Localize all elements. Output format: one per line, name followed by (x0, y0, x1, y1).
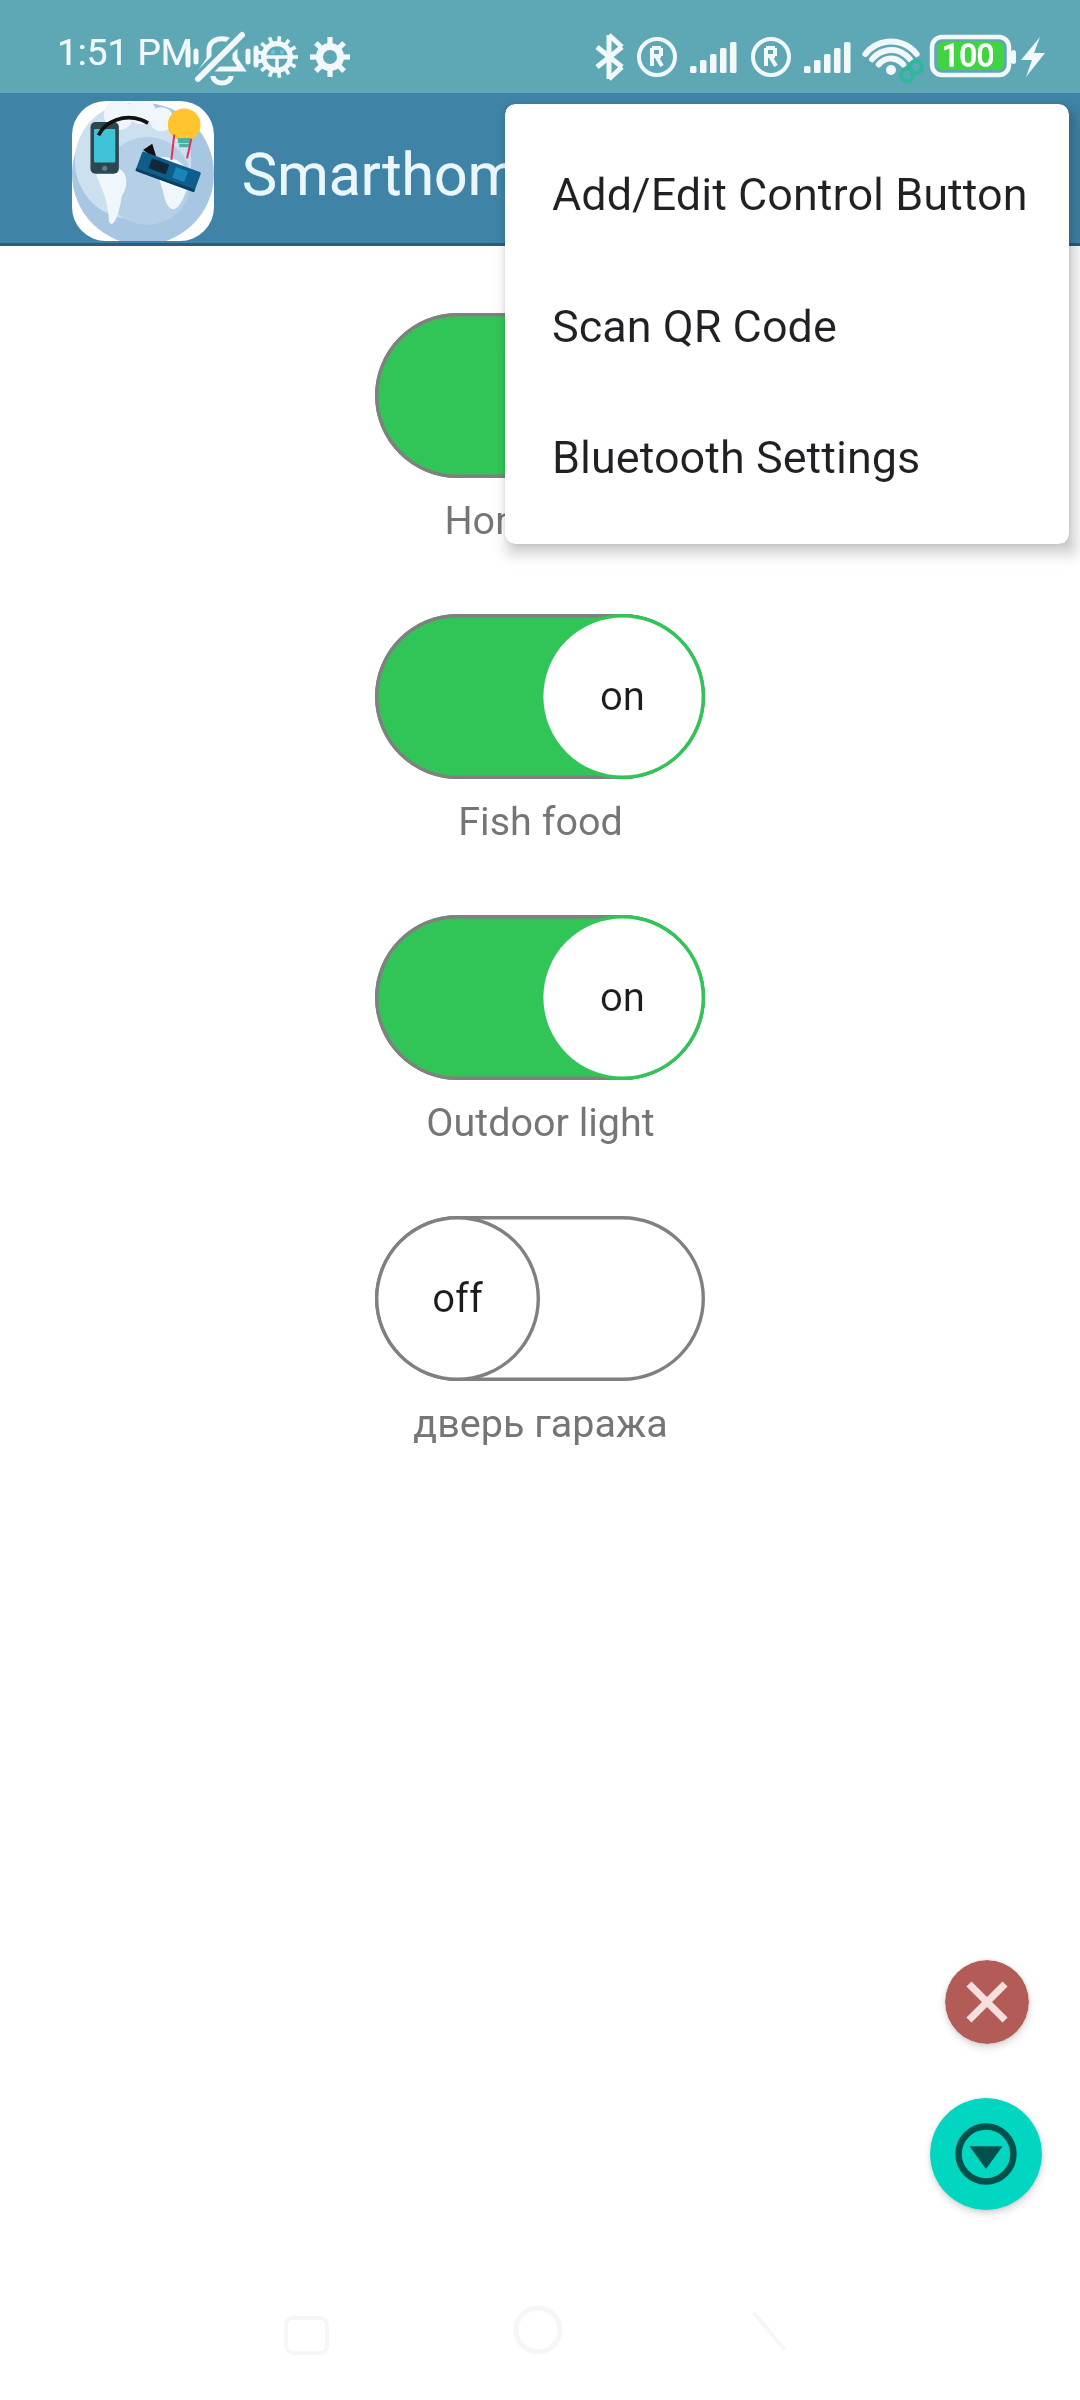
staticText: 100 (942, 37, 995, 73)
staticText: Bluetooth Settings (552, 431, 921, 484)
button[interactable]: Bluetooth Settings (505, 391, 1069, 523)
staticText: Home light (444, 497, 637, 543)
button[interactable]: Expand (930, 2098, 1042, 2210)
staticText: 1:51 PM (57, 31, 194, 74)
button[interactable]: Add/Edit Control Button (505, 128, 1069, 260)
button[interactable]: Close (945, 1960, 1029, 2044)
staticText: on (600, 974, 645, 1021)
staticText: Smarthome (242, 140, 551, 209)
button[interactable]: on (375, 915, 705, 1080)
staticText: Fish food (458, 798, 623, 844)
staticText: Add/Edit Control Button (552, 168, 1028, 221)
button[interactable]: on (375, 614, 705, 779)
staticText: off (432, 1275, 483, 1322)
staticText: дверь гаража (413, 1400, 668, 1446)
button[interactable]: Scan QR Code (505, 260, 1069, 392)
staticText: Scan QR Code (552, 300, 837, 353)
staticText: on (600, 673, 645, 720)
button[interactable]: off (375, 1216, 705, 1381)
button[interactable]: Smarthome logo (72, 101, 214, 241)
button[interactable]: on (375, 313, 705, 478)
staticText: Outdoor light (426, 1099, 655, 1145)
